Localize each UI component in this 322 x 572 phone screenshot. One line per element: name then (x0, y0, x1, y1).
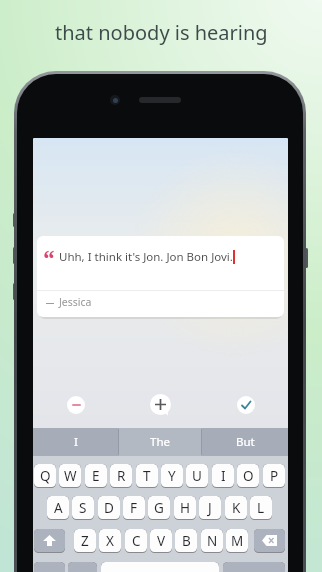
staticText: I (74, 434, 78, 450)
button[interactable] (67, 396, 85, 414)
button[interactable]: S (72, 496, 94, 520)
button[interactable]: T (136, 464, 158, 488)
staticText: C (132, 532, 141, 550)
button[interactable] (237, 396, 255, 414)
staticText: X (106, 532, 114, 550)
staticText: D (104, 499, 114, 517)
button[interactable]: H (174, 496, 196, 520)
staticText: K (232, 499, 241, 517)
staticText: But (236, 434, 255, 450)
staticText: E (92, 467, 100, 485)
staticText: “ (43, 242, 55, 275)
button[interactable]: X (99, 529, 121, 553)
button[interactable]: P (263, 464, 285, 488)
button[interactable]: B (175, 529, 197, 553)
button[interactable] (150, 394, 171, 415)
staticText: N (207, 532, 218, 550)
staticText: H (180, 499, 191, 517)
staticText: M (231, 532, 244, 550)
button[interactable]: W (59, 464, 81, 488)
button[interactable]: But (202, 428, 288, 456)
staticText: Q (40, 467, 51, 485)
staticText: Jessica (59, 295, 92, 309)
staticText: U (192, 467, 202, 485)
button[interactable]: A (47, 496, 69, 520)
button[interactable]: I (212, 464, 234, 488)
button[interactable]: E (85, 464, 107, 488)
staticText: S (79, 499, 87, 517)
button[interactable]: M (226, 529, 248, 553)
staticText: Uhh, I think it's Jon. Jon Bon Jovi. (59, 249, 233, 265)
staticText: A (54, 499, 63, 517)
button[interactable]: J (199, 496, 221, 520)
staticText: W (64, 467, 77, 485)
button[interactable]: F (123, 496, 145, 520)
staticText: R (117, 467, 126, 485)
button[interactable]: C (125, 529, 147, 553)
button[interactable]: R (110, 464, 132, 488)
staticText: P (270, 467, 279, 485)
staticText: G (154, 499, 164, 517)
button[interactable]: U (186, 464, 208, 488)
staticText: I (221, 467, 226, 485)
button[interactable] (254, 529, 285, 553)
button[interactable]: D (98, 496, 120, 520)
button[interactable]: Q (34, 464, 56, 488)
button[interactable]: “ (37, 236, 284, 317)
staticText: Z (81, 532, 89, 550)
staticText: V (157, 532, 166, 550)
button[interactable] (101, 562, 219, 572)
button[interactable]: N (201, 529, 223, 553)
button[interactable]: O (237, 464, 259, 488)
staticText: The (150, 434, 170, 450)
staticText: B (182, 532, 191, 550)
button[interactable] (34, 529, 65, 553)
button[interactable]: Y (161, 464, 183, 488)
staticText: that nobody is hearing (55, 19, 268, 46)
button[interactable]: L (250, 496, 272, 520)
button[interactable]: G (148, 496, 170, 520)
button[interactable]: I (33, 428, 118, 456)
staticText: Y (168, 467, 176, 485)
staticText: F (130, 499, 138, 517)
staticText: J (208, 499, 212, 517)
staticText: L (257, 499, 265, 517)
staticText: O (243, 467, 254, 485)
button[interactable]: V (150, 529, 172, 553)
button[interactable] (68, 562, 97, 572)
button[interactable]: Z (74, 529, 96, 553)
button[interactable]: K (225, 496, 247, 520)
button[interactable]: The (119, 428, 201, 456)
staticText: T (143, 467, 151, 485)
button[interactable] (34, 562, 65, 572)
